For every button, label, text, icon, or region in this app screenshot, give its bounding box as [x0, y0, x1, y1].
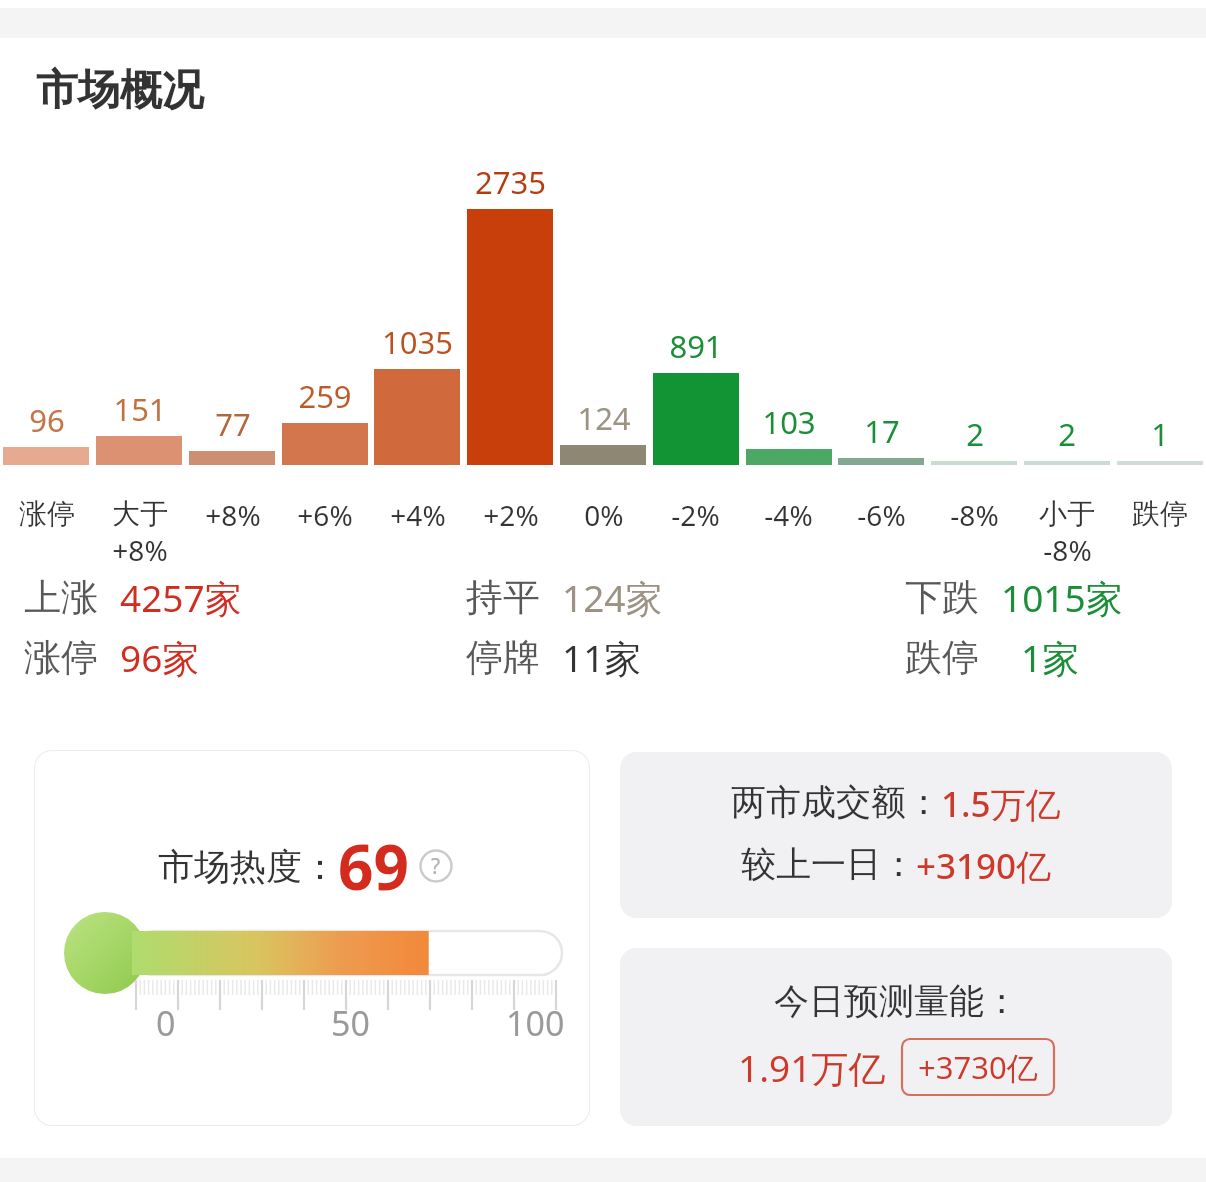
button[interactable]: 两市成交额： — [620, 752, 1172, 918]
staticText: 77 — [215, 403, 251, 445]
staticText: +8% — [112, 531, 168, 569]
staticText: 上涨 — [24, 574, 98, 621]
staticText: 停牌 — [466, 634, 540, 681]
staticText: 涨停 — [19, 496, 75, 531]
staticText: 1035 — [382, 321, 453, 363]
staticText: +3730亿 — [918, 1046, 1038, 1088]
button[interactable]: 下跌 — [905, 572, 1123, 623]
staticText: 持平 — [466, 574, 540, 621]
staticText: 69 — [338, 824, 409, 908]
button[interactable]: 涨停 — [24, 632, 200, 683]
staticText: 跌停 — [1132, 496, 1188, 531]
button[interactable]: 持平 — [466, 572, 663, 623]
staticText: 1.91万亿 — [738, 1042, 886, 1093]
staticText: +3190亿 — [916, 842, 1052, 890]
button[interactable]: 市场热度： — [34, 750, 590, 1126]
staticText: -8% — [1043, 531, 1092, 569]
staticText: 1015家 — [1001, 572, 1123, 623]
staticText: 下跌 — [905, 574, 979, 621]
staticText: 124家 — [562, 572, 663, 623]
staticText: 1 — [1151, 413, 1169, 455]
staticText: +4% — [390, 496, 446, 534]
staticText: 涨停 — [24, 634, 98, 681]
staticText: 市场热度： — [158, 844, 338, 889]
staticText: -2% — [671, 496, 720, 534]
button[interactable]: 停牌 — [466, 632, 642, 683]
staticText: 96家 — [120, 632, 200, 683]
staticText: 124 — [577, 397, 631, 439]
staticText: +6% — [297, 496, 353, 534]
staticText: 2735 — [475, 161, 546, 203]
staticText: 市场概况 — [36, 64, 204, 117]
staticText: -8% — [950, 496, 999, 534]
staticText: -6% — [857, 496, 906, 534]
staticText: 17 — [864, 410, 900, 452]
staticText: 4257家 — [120, 572, 242, 623]
staticText: 较上一日： — [741, 842, 916, 886]
staticText: 两市成交额： — [731, 780, 941, 824]
staticText: 11家 — [562, 632, 642, 683]
staticText: 1家 — [1021, 632, 1080, 683]
staticText: 0 — [156, 1000, 176, 1046]
staticText: 259 — [298, 375, 352, 417]
button[interactable]: 跌停 — [905, 632, 1080, 683]
staticText: ? — [431, 852, 441, 881]
staticText: 2 — [1058, 413, 1076, 455]
button[interactable]: 今日预测量能： — [620, 948, 1172, 1126]
staticText: -4% — [764, 496, 813, 534]
button[interactable]: 市场热度说明 — [419, 849, 453, 883]
staticText: 151 — [113, 388, 167, 430]
button[interactable]: 上涨 — [24, 572, 242, 623]
staticText: 今日预测量能： — [774, 979, 1019, 1023]
staticText: 100 — [506, 1000, 565, 1046]
staticText: 2 — [966, 413, 984, 455]
staticText: 50 — [331, 1000, 370, 1046]
staticText: 96 — [29, 399, 65, 441]
staticText: 大于 — [112, 496, 168, 531]
staticText: 891 — [669, 325, 723, 367]
staticText: 0% — [584, 496, 624, 534]
staticText: 103 — [762, 401, 816, 443]
staticText: 小于 — [1039, 496, 1095, 531]
staticText: 跌停 — [905, 634, 979, 681]
staticText: 1.5万亿 — [941, 780, 1061, 828]
staticText: +8% — [205, 496, 261, 534]
staticText: +2% — [483, 496, 539, 534]
